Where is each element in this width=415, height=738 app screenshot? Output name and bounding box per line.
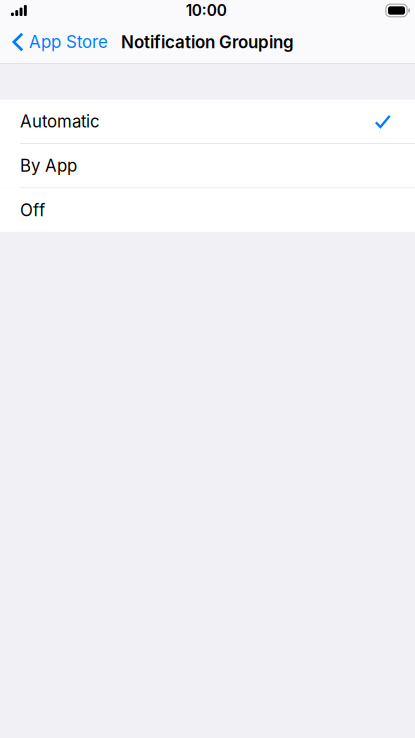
button[interactable]: Off	[0, 188, 415, 232]
staticText: Off	[20, 200, 45, 220]
staticText: Notification Grouping	[121, 32, 294, 52]
button[interactable]: App Store	[0, 21, 115, 63]
staticText: App Store	[29, 32, 108, 52]
button[interactable]: Selected	[0, 100, 415, 143]
staticText: By App	[20, 156, 77, 176]
button[interactable]: By App	[0, 144, 415, 187]
staticText: Automatic	[20, 111, 100, 132]
staticText: 10:00	[186, 1, 227, 20]
